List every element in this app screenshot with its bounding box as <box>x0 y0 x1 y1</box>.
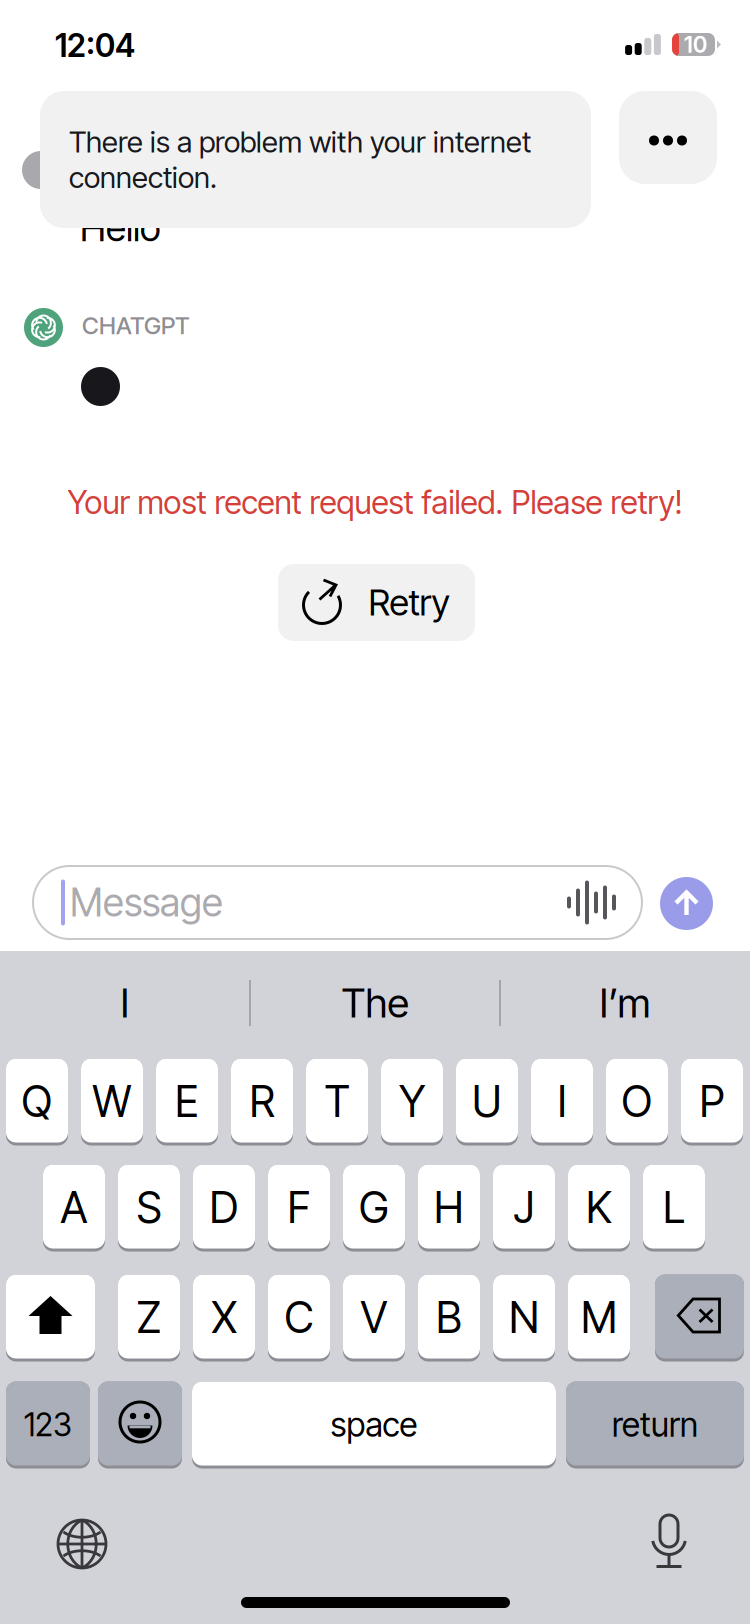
button[interactable]: T <box>306 1057 368 1144</box>
staticText: 123 <box>24 1405 72 1444</box>
staticText: M <box>581 1292 617 1343</box>
staticText: V <box>360 1292 387 1343</box>
staticText: space <box>330 1404 417 1445</box>
button[interactable]: Shift <box>6 1273 95 1360</box>
button[interactable]: A <box>43 1163 105 1250</box>
button[interactable]: G <box>343 1163 405 1250</box>
button[interactable]: M <box>568 1273 630 1360</box>
button[interactable]: There is a problem with your internet co… <box>40 91 591 228</box>
button[interactable]: C <box>268 1273 330 1360</box>
button[interactable]: space <box>192 1380 556 1467</box>
button[interactable]: P <box>681 1057 743 1144</box>
button[interactable]: 123 <box>6 1380 90 1467</box>
button[interactable]: O <box>606 1057 668 1144</box>
staticText: C <box>284 1292 313 1343</box>
staticText: There is a problem with your internet co… <box>69 124 531 195</box>
staticText: R <box>249 1076 274 1127</box>
button[interactable]: E <box>156 1057 218 1144</box>
staticText: I <box>120 979 129 1027</box>
button[interactable]: Q <box>6 1057 68 1144</box>
button[interactable]: V <box>343 1273 405 1360</box>
button[interactable]: F <box>268 1163 330 1250</box>
staticText: Z <box>136 1292 161 1343</box>
button[interactable]: R <box>231 1057 293 1144</box>
staticText: U <box>472 1076 502 1127</box>
staticText: O <box>621 1076 652 1127</box>
button[interactable]: Message <box>33 866 642 939</box>
staticText: CHATGPT <box>82 311 190 340</box>
staticText: J <box>513 1182 534 1233</box>
staticText: Retry <box>368 581 449 624</box>
button[interactable]: L <box>643 1163 705 1250</box>
staticText: S <box>136 1182 161 1233</box>
button[interactable]: Backspace <box>655 1273 744 1360</box>
staticText: K <box>586 1182 612 1233</box>
staticText: W <box>92 1076 131 1127</box>
staticText: I <box>557 1076 566 1127</box>
button[interactable]: I <box>531 1057 593 1144</box>
staticText: A <box>60 1182 87 1233</box>
staticText: P <box>699 1076 724 1127</box>
button[interactable]: S <box>118 1163 180 1250</box>
staticText: Hello <box>80 205 161 250</box>
button[interactable]: The <box>250 960 500 1046</box>
staticText: G <box>359 1182 389 1233</box>
staticText: return <box>612 1404 698 1445</box>
staticText: F <box>287 1182 310 1233</box>
button[interactable]: return <box>566 1380 744 1467</box>
button[interactable]: Dictate <box>651 1513 688 1571</box>
button[interactable]: Retry <box>278 564 475 641</box>
staticText: D <box>209 1182 238 1233</box>
staticText: T <box>324 1076 349 1127</box>
staticText: 10 <box>684 31 707 58</box>
staticText: Message <box>70 879 223 926</box>
button[interactable]: U <box>456 1057 518 1144</box>
button[interactable]: More options <box>619 91 717 184</box>
button[interactable]: K <box>568 1163 630 1250</box>
staticText: I’m <box>599 979 650 1027</box>
staticText: Q <box>21 1076 52 1127</box>
staticText: E <box>175 1076 199 1127</box>
staticText: The <box>341 979 408 1027</box>
staticText: 12:04 <box>55 26 135 65</box>
button[interactable]: Y <box>381 1057 443 1144</box>
staticText: B <box>436 1292 462 1343</box>
staticText: Y <box>399 1076 425 1127</box>
button[interactable]: I <box>0 960 250 1046</box>
staticText: Your most recent request failed. Please … <box>67 483 682 522</box>
button[interactable]: N <box>493 1273 555 1360</box>
button[interactable]: W <box>81 1057 143 1144</box>
button[interactable]: Z <box>118 1273 180 1360</box>
button[interactable]: Emoji <box>98 1380 182 1467</box>
button[interactable]: H <box>418 1163 480 1250</box>
staticText: H <box>434 1182 464 1233</box>
button[interactable]: B <box>418 1273 480 1360</box>
button[interactable]: I’m <box>500 960 750 1046</box>
button[interactable]: X <box>193 1273 255 1360</box>
staticText: L <box>663 1182 685 1233</box>
button[interactable]: Send <box>660 877 713 930</box>
button[interactable]: D <box>193 1163 255 1250</box>
staticText: N <box>509 1292 539 1343</box>
button[interactable]: Switch keyboard <box>46 1508 118 1580</box>
staticText: X <box>211 1292 236 1343</box>
button[interactable]: J <box>493 1163 555 1250</box>
